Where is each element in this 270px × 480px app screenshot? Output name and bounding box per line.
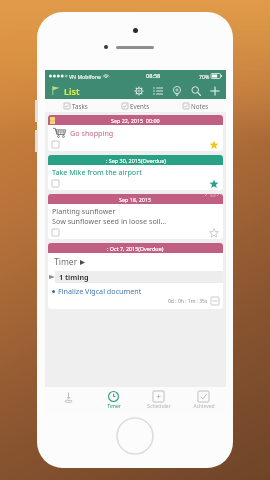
staticText: Scheduler xyxy=(147,403,171,410)
staticText: Tasks xyxy=(72,102,88,110)
button[interactable]: Star xyxy=(208,178,219,189)
staticText: Sep 18, 2015 xyxy=(119,196,152,203)
button[interactable]: Finalize Vigcal document xyxy=(58,286,142,296)
button[interactable]: Achieved xyxy=(181,387,226,413)
staticText: Achieved xyxy=(193,403,215,410)
staticText: : Sep 30, 2015(Overdue) xyxy=(106,157,166,164)
button[interactable]: Notes xyxy=(166,99,226,112)
button[interactable]: Add xyxy=(208,84,222,98)
staticText: 70% xyxy=(199,73,210,80)
staticText: 08:58 xyxy=(146,72,161,80)
button[interactable]: Complete xyxy=(52,229,59,236)
staticText: Events xyxy=(130,102,150,110)
button[interactable]: View list xyxy=(151,84,165,98)
staticText: VN Mobifone xyxy=(69,73,101,80)
button[interactable]: 1 timing xyxy=(48,271,223,283)
staticText: Sep 22, 2015 00:00 xyxy=(111,117,160,124)
button[interactable]: Events xyxy=(106,99,166,112)
staticText: Sow sunflower seed in loose soil... xyxy=(52,216,167,226)
staticText: Finalize Vigcal document xyxy=(58,286,142,296)
button[interactable]: Tasks xyxy=(45,99,106,112)
button[interactable]: Filter xyxy=(49,84,62,97)
button[interactable]: Location xyxy=(170,84,184,98)
staticText: Planting sunflower xyxy=(52,206,116,216)
button[interactable]: Complete xyxy=(52,141,59,148)
staticText: : Oct 7, 2015(Overdue) xyxy=(107,245,164,252)
staticText: Go shopping xyxy=(70,128,114,138)
staticText: 1 timing xyxy=(59,272,89,282)
button[interactable]: Inbox xyxy=(45,387,91,413)
staticText: 0d : 0h : 1m : 35s xyxy=(168,298,208,305)
button[interactable]: Sep 18, 2015 xyxy=(48,194,223,239)
button[interactable]: Search xyxy=(189,84,203,98)
button[interactable]: Sep 22, 2015 00:00 xyxy=(48,115,223,151)
button[interactable]: Settings xyxy=(132,84,146,98)
button[interactable]: Star xyxy=(208,227,219,238)
button[interactable]: List xyxy=(64,85,80,97)
button[interactable]: Scheduler xyxy=(136,387,181,413)
button[interactable]: Star xyxy=(208,139,219,150)
staticText: List xyxy=(64,85,80,97)
staticText: Take Mike from the airport xyxy=(52,167,142,177)
staticText: Timer xyxy=(107,403,121,410)
button[interactable]: Timer xyxy=(91,387,136,413)
button[interactable]: Timer xyxy=(54,256,223,268)
staticText: Notes xyxy=(191,102,209,110)
staticText: Timer xyxy=(54,256,78,268)
button[interactable]: : Sep 30, 2015(Overdue) xyxy=(48,155,223,190)
button[interactable]: Complete xyxy=(52,180,59,187)
